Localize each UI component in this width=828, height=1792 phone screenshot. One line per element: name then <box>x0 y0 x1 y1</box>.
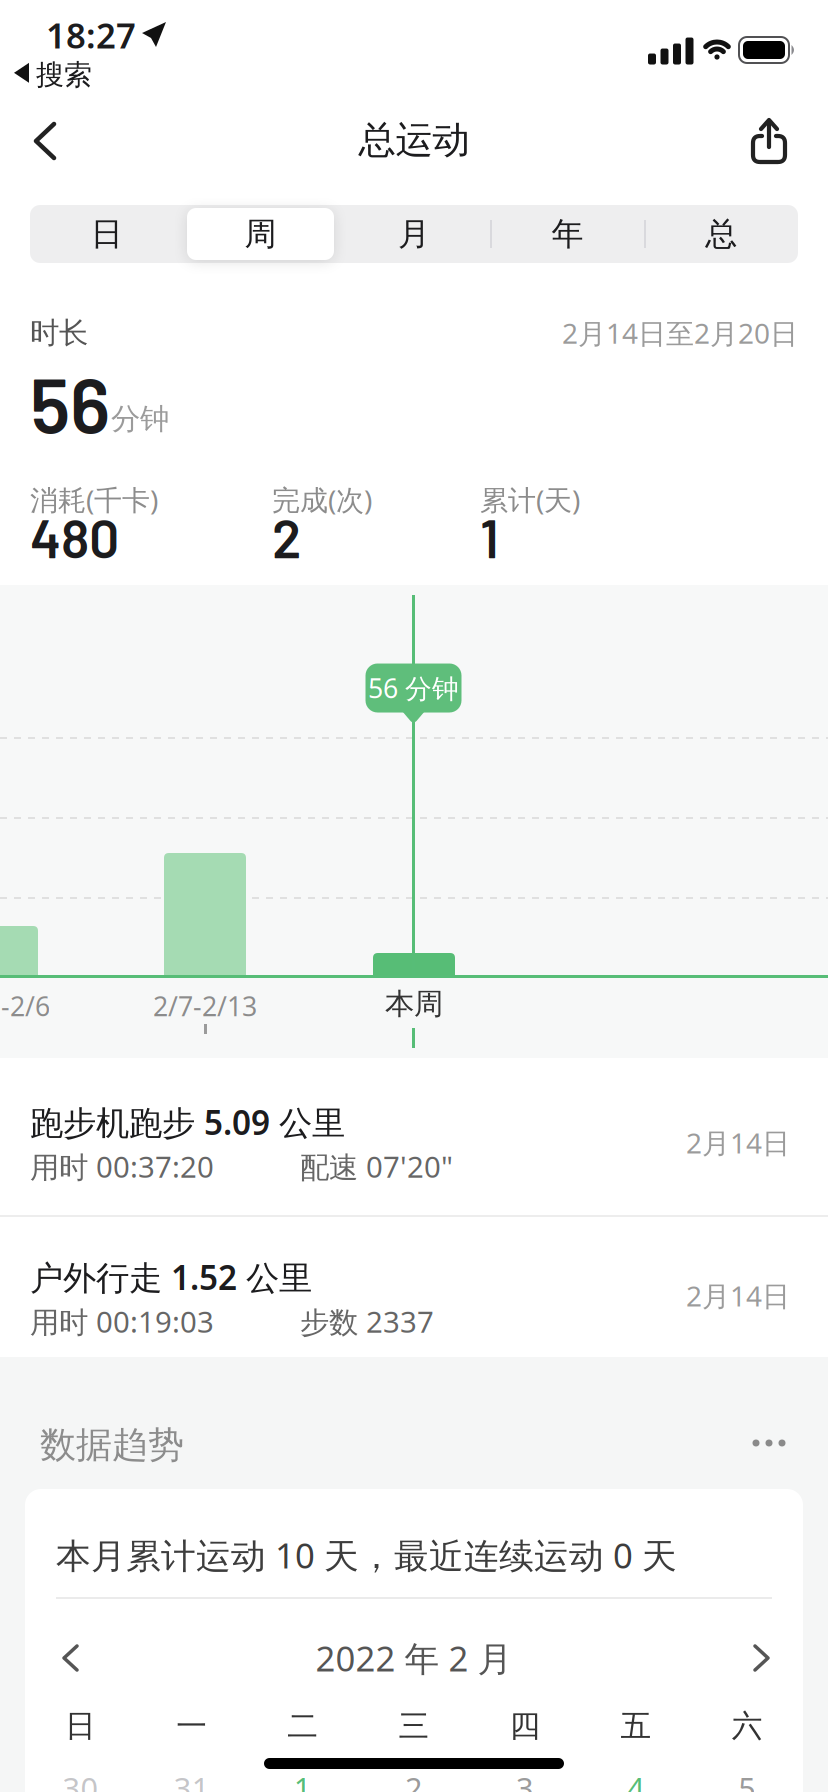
staticText: 18:27 <box>46 12 136 58</box>
staticText: 累计(天) <box>480 481 580 518</box>
button[interactable]: 年 <box>491 205 644 263</box>
staticText: 总 <box>705 214 737 254</box>
staticText: 2 <box>272 505 301 569</box>
staticText: 用时 00:19:03 <box>30 1302 214 1341</box>
staticText: 本月累计运动 10 天，最近连续运动 0 天 <box>56 1532 677 1578</box>
staticText: 配速 07'20" <box>300 1147 453 1186</box>
staticText: 5 <box>738 1768 756 1792</box>
staticText: 完成(次) <box>272 481 372 518</box>
button[interactable]: Share <box>741 109 797 169</box>
staticText: 1 <box>294 1768 312 1792</box>
staticText: 一 <box>176 1707 207 1745</box>
button[interactable]: More <box>737 1423 801 1463</box>
staticText: 四 <box>509 1707 540 1745</box>
staticText: 步数 2337 <box>300 1302 434 1341</box>
staticText: 分钟 <box>111 401 169 437</box>
staticText: 30 <box>63 1768 99 1792</box>
staticText: 周 <box>244 214 276 254</box>
staticText: 搜索 <box>36 58 92 92</box>
staticText: 2022 年 2 月 <box>315 1635 512 1681</box>
staticText: 3 <box>516 1768 534 1792</box>
staticText: 用时 00:37:20 <box>30 1147 214 1186</box>
button[interactable]: 日 <box>30 205 183 263</box>
staticText: 56 分钟 <box>368 670 459 706</box>
staticText: 月 <box>398 214 430 254</box>
staticText: 4 <box>627 1768 645 1792</box>
button[interactable]: 周 <box>184 205 337 263</box>
staticText: 年 <box>552 214 584 254</box>
button[interactable]: 月 <box>337 205 490 263</box>
staticText: 2月14日 <box>686 1124 790 1161</box>
staticText: 1/31-2/6 <box>0 988 50 1024</box>
staticText: 2 <box>405 1768 423 1792</box>
staticText: 五 <box>621 1707 652 1745</box>
staticText: 2月14日 <box>686 1277 790 1314</box>
staticText: 时长 <box>30 315 88 351</box>
staticText: 56 <box>30 357 110 449</box>
button[interactable]: Previous month <box>47 1634 95 1682</box>
staticText: 本周 <box>385 986 443 1022</box>
staticText: 数据趋势 <box>40 1423 184 1467</box>
button[interactable]: 户外行走 1.52 公里 <box>0 1217 828 1357</box>
button[interactable]: 跑步机跑步 5.09 公里 <box>0 1058 828 1215</box>
staticText: 日 <box>65 1707 96 1745</box>
button[interactable]: 总 <box>645 205 798 263</box>
staticText: 日 <box>91 214 123 254</box>
staticText: 1 <box>480 505 499 569</box>
staticText: 三 <box>398 1707 429 1745</box>
staticText: 2/7-2/13 <box>153 988 257 1024</box>
staticText: 2月14日至2月20日 <box>562 314 798 352</box>
staticText: 31 <box>174 1768 210 1792</box>
button[interactable]: Back <box>16 113 72 169</box>
staticText: 总运动 <box>358 117 469 163</box>
staticText: 跑步机跑步 5.09 公里 <box>30 1100 345 1144</box>
staticText: 二 <box>287 1707 318 1745</box>
staticText: 六 <box>732 1707 763 1745</box>
button[interactable]: 返回搜索 <box>13 59 109 91</box>
staticText: 户外行走 1.52 公里 <box>30 1255 312 1299</box>
staticText: 480 <box>30 505 119 569</box>
button[interactable]: Next month <box>737 1634 785 1682</box>
staticText: 消耗(千卡) <box>30 481 158 518</box>
